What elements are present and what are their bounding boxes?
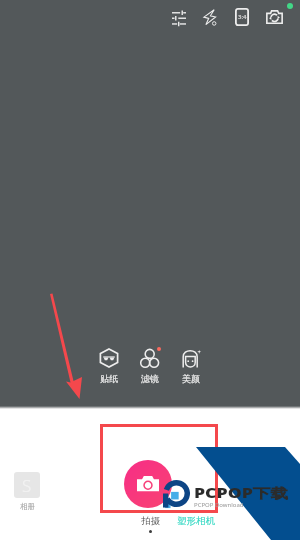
button[interactable]: Adjust settings	[166, 5, 192, 31]
button[interactable]: Aspect ratio 3 by 4	[229, 4, 255, 30]
button[interactable]: Shutter	[124, 460, 172, 508]
button[interactable]: Switch camera	[261, 4, 287, 30]
staticText: 拍摄	[141, 515, 160, 527]
button[interactable]: 塑形相机	[177, 515, 215, 527]
button[interactable]: S	[14, 472, 40, 511]
staticText: 3:4	[238, 13, 247, 21]
button[interactable]: Stickers	[89, 345, 129, 384]
button[interactable]: Beauty	[171, 345, 211, 384]
staticText: PCPOP下载	[194, 484, 289, 502]
staticText: 美颜	[182, 373, 200, 384]
staticText: 塑形相机	[177, 515, 215, 527]
staticText: S	[22, 474, 32, 497]
button[interactable]: Filters	[130, 345, 170, 384]
button[interactable]: 拍摄	[141, 515, 160, 533]
staticText: 相册	[20, 502, 35, 511]
button[interactable]: Flash auto	[196, 4, 222, 30]
staticText: 贴纸	[100, 373, 118, 384]
staticText: PCPOP Download	[194, 501, 244, 509]
staticText: 滤镜	[141, 373, 159, 384]
